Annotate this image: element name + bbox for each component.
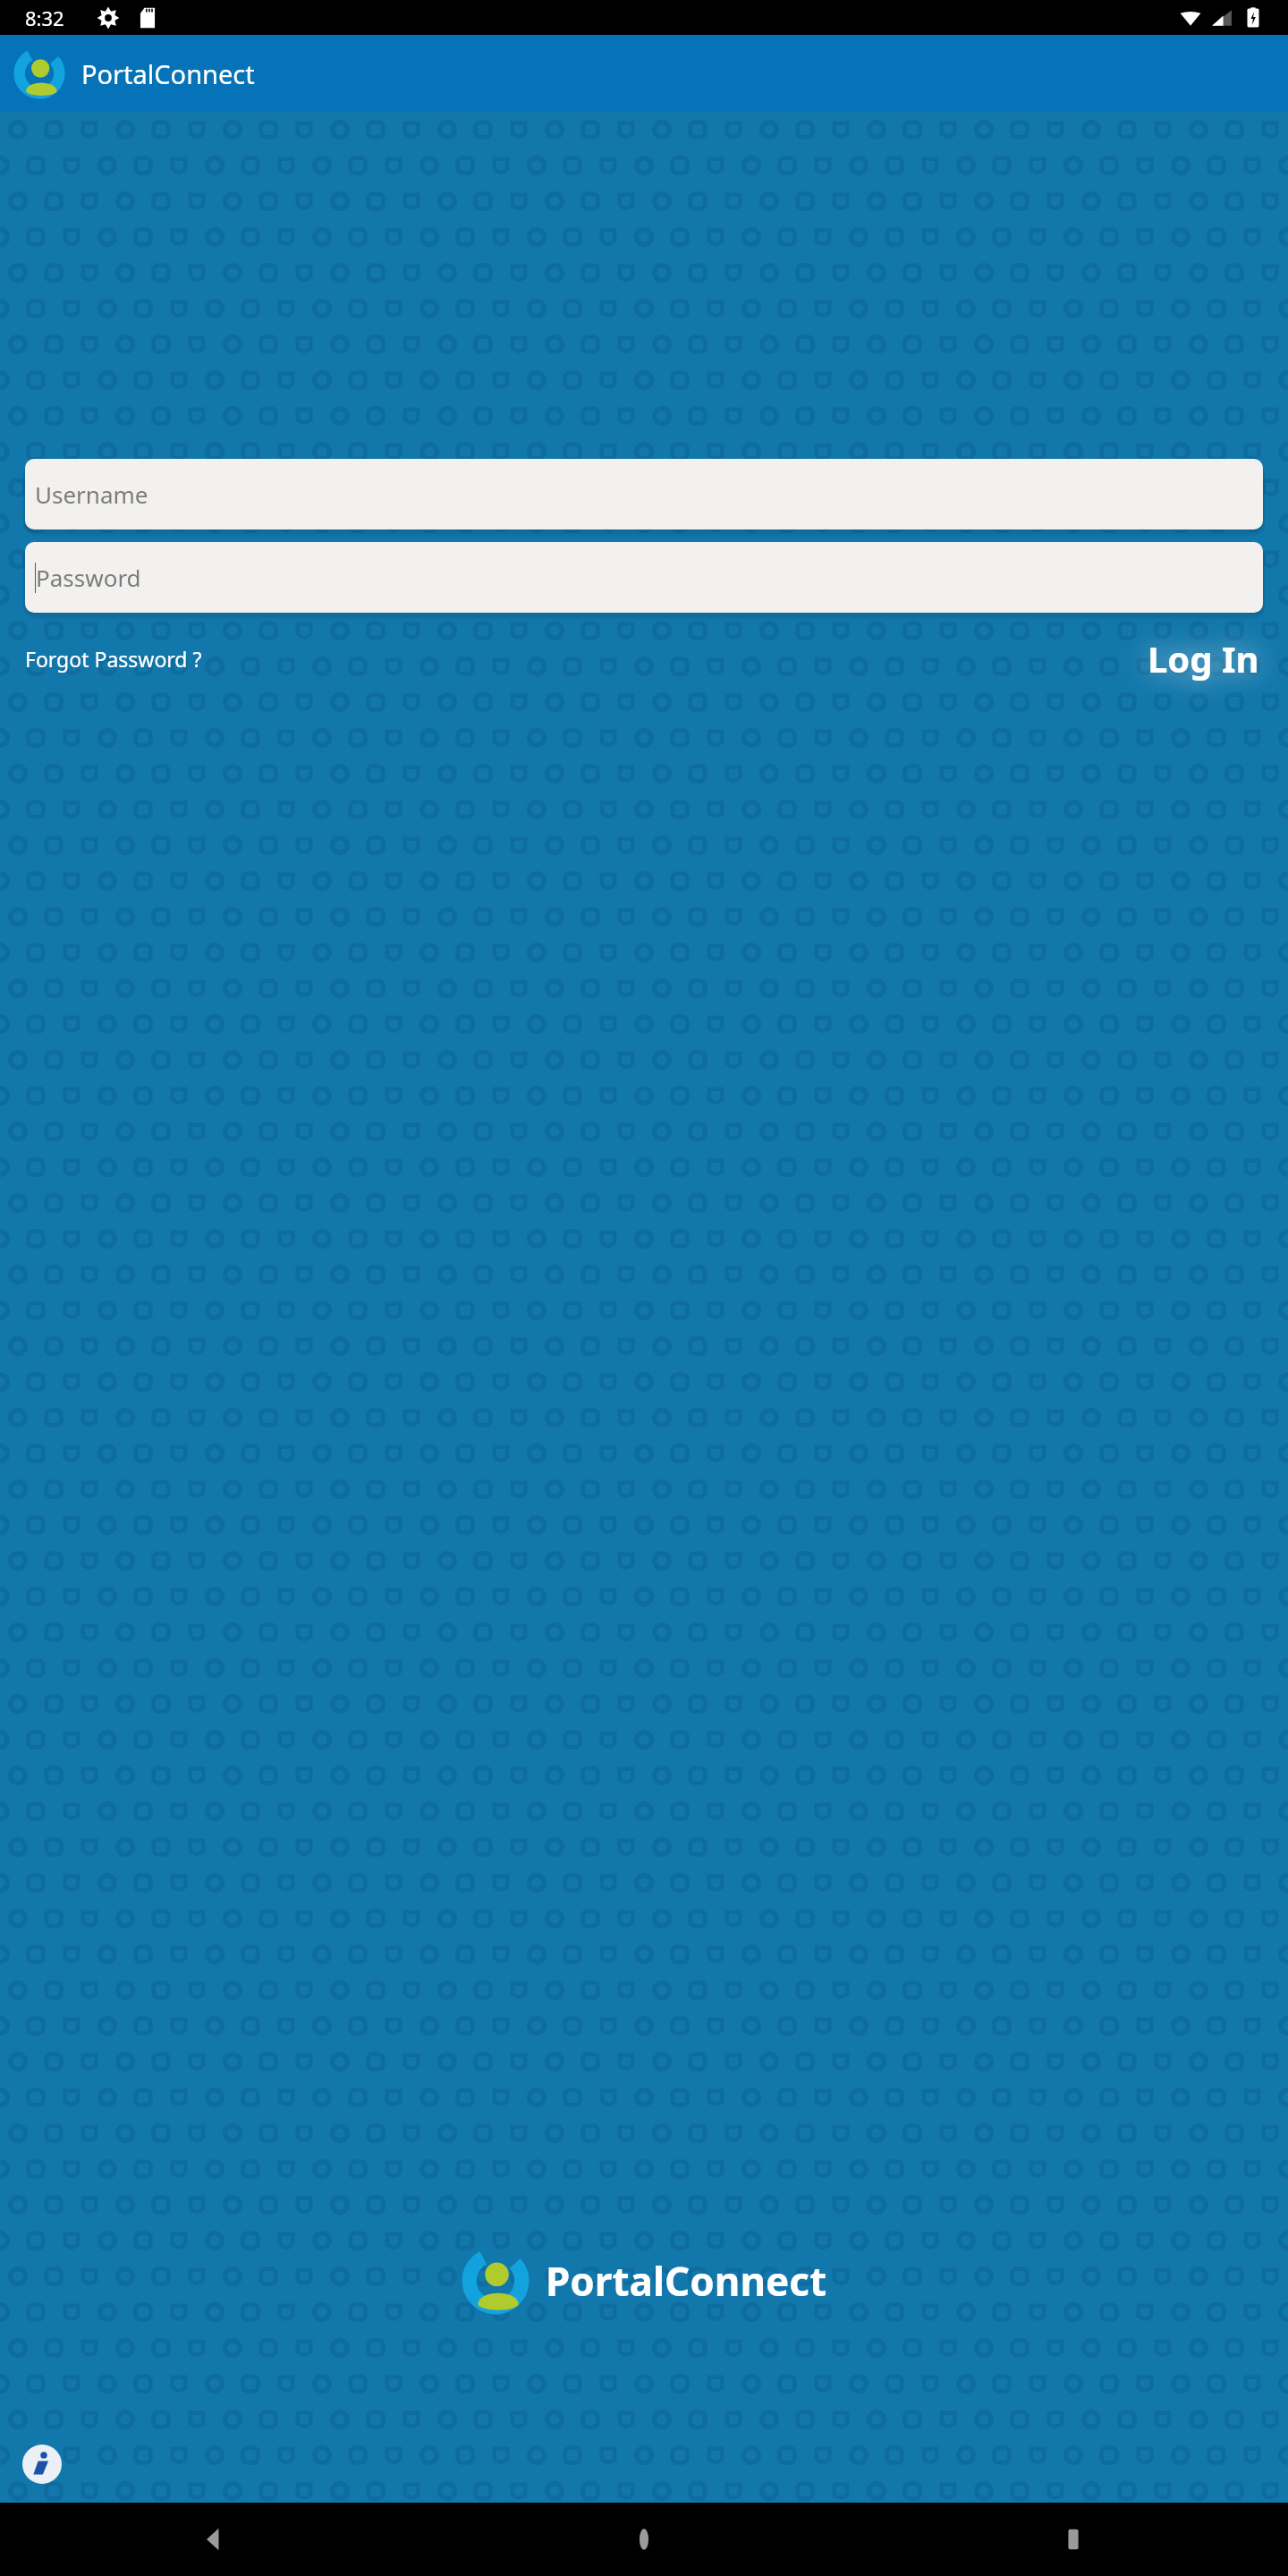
- button[interactable]: Information: [18, 2440, 66, 2488]
- button[interactable]: Log In: [1144, 632, 1263, 684]
- staticText: 8:32: [25, 4, 64, 31]
- button[interactable]: Password: [25, 542, 1263, 613]
- button[interactable]: Username: [25, 459, 1263, 530]
- button[interactable]: Forgot Password ?: [25, 640, 202, 678]
- staticText: Forgot Password ?: [25, 645, 202, 673]
- button[interactable]: Home: [429, 2503, 859, 2576]
- staticText: PortalConnect: [81, 56, 255, 91]
- button[interactable]: Back: [0, 2503, 429, 2576]
- staticText: PortalConnect: [546, 2254, 827, 2308]
- staticText: Username: [35, 479, 148, 510]
- button[interactable]: Recent apps: [859, 2503, 1288, 2576]
- staticText: Password: [36, 562, 141, 593]
- staticText: Log In: [1148, 634, 1259, 682]
